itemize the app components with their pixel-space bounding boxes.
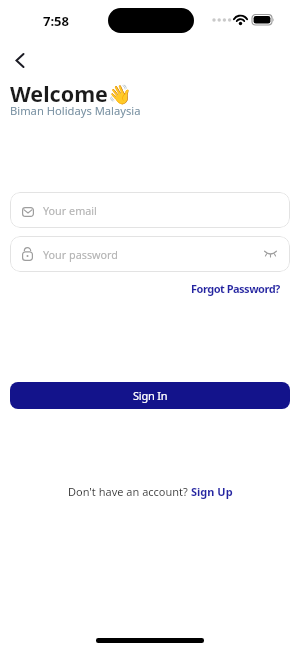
staticText: Forgot Password?: [191, 281, 280, 296]
button[interactable]: [6, 47, 34, 74]
staticText: Don't have an account?: [68, 484, 191, 499]
staticText: Sign In: [133, 388, 168, 403]
button[interactable]: Forgot Password?: [191, 281, 280, 296]
button[interactable]: Your email: [10, 192, 290, 228]
button[interactable]: Your password: [10, 236, 290, 272]
button[interactable]: Sign Up: [191, 484, 233, 499]
staticText: 7:58: [43, 12, 69, 30]
staticText: Welcome: [10, 79, 108, 108]
staticText: Biman Holidays Malaysia: [10, 103, 141, 118]
staticText: 👋: [108, 83, 132, 105]
staticText: Sign Up: [191, 484, 233, 499]
button[interactable]: Sign In: [10, 382, 290, 409]
staticText: Your email: [43, 203, 97, 218]
staticText: Your password: [43, 247, 118, 262]
